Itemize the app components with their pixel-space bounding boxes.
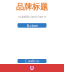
button[interactable]: U (0, 64, 64, 72)
button[interactable]: Confirm (17, 59, 46, 63)
staticText: Confirm (24, 58, 39, 64)
staticText: 品牌标题 (16, 2, 48, 12)
staticText: Action (26, 23, 37, 28)
staticText: subtitle text here (18, 14, 46, 19)
staticText: U (30, 64, 34, 72)
button[interactable]: Action (17, 23, 46, 28)
